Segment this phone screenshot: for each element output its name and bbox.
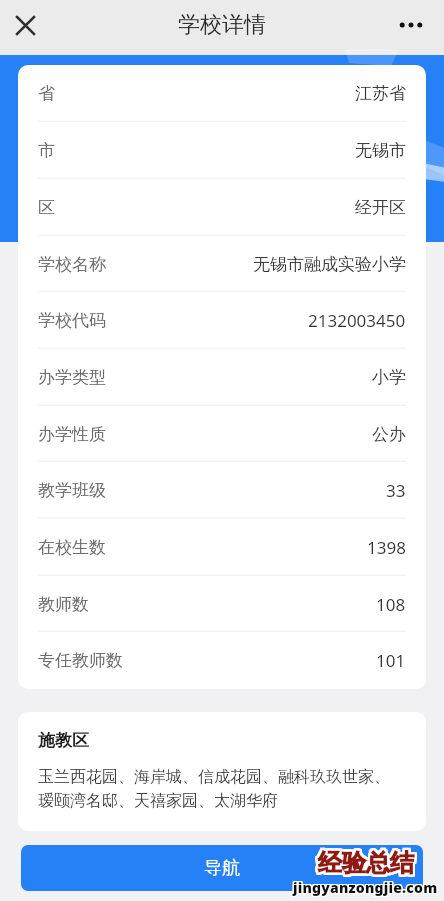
staticText: 经验总结 bbox=[319, 850, 415, 880]
staticText: 江苏省 bbox=[355, 83, 406, 104]
staticText: 学校代码 bbox=[38, 310, 106, 331]
staticText: 2132003450 bbox=[308, 309, 406, 332]
staticText: 学校名称 bbox=[38, 254, 106, 275]
staticText: 33 bbox=[386, 479, 406, 502]
staticText: 专任教师数 bbox=[38, 650, 123, 671]
staticText: 无锡市 bbox=[355, 140, 406, 161]
staticText: 经验总结 bbox=[316, 849, 412, 879]
staticText: 经验总结 bbox=[318, 847, 414, 877]
staticText: jingyanzongjie.com bbox=[294, 878, 439, 897]
staticText: 公办 bbox=[372, 424, 406, 445]
staticText: 区 bbox=[38, 197, 55, 218]
button[interactable]: 专任教师数 bbox=[38, 632, 406, 689]
staticText: 经验总结 bbox=[316, 847, 412, 877]
staticText: 经验总结 bbox=[319, 848, 415, 878]
staticText: 经验总结 bbox=[318, 850, 414, 880]
staticText: jingyanzongjie.com bbox=[292, 877, 437, 896]
staticText: 经验总结 bbox=[320, 850, 416, 880]
staticText: 经验总结 bbox=[319, 847, 415, 877]
staticText: 经验总结 bbox=[318, 849, 414, 879]
staticText: 经验总结 bbox=[318, 848, 414, 878]
button[interactable]: 教学班级 bbox=[38, 462, 406, 519]
staticText: 经验总结 bbox=[316, 846, 412, 876]
button[interactable]: 学校代码 bbox=[38, 292, 406, 349]
staticText: jingyanzongjie.com bbox=[294, 879, 439, 898]
button[interactable]: 教师数 bbox=[38, 576, 406, 632]
staticText: 经验总结 bbox=[316, 850, 412, 880]
staticText: 小学 bbox=[372, 367, 406, 388]
staticText: 经验总结 bbox=[317, 846, 413, 876]
staticText: jingyanzongjie.com bbox=[292, 879, 437, 898]
staticText: 经验总结 bbox=[319, 849, 415, 879]
staticText: 经开区 bbox=[355, 197, 406, 218]
staticText: 办学性质 bbox=[38, 424, 106, 445]
staticText: 经验总结 bbox=[320, 849, 416, 879]
staticText: 经验总结 bbox=[320, 847, 416, 877]
staticText: jingyanzongjie.com bbox=[294, 877, 439, 896]
button[interactable]: 学校名称 bbox=[38, 236, 406, 292]
staticText: 省 bbox=[38, 83, 55, 104]
staticText: 108 bbox=[376, 593, 406, 616]
staticText: 市 bbox=[38, 140, 55, 161]
staticText: 1398 bbox=[367, 536, 406, 559]
staticText: 办学类型 bbox=[38, 367, 106, 388]
staticText: 经验总结 bbox=[320, 846, 416, 876]
button[interactable]: 办学性质 bbox=[38, 406, 406, 462]
button[interactable]: More options bbox=[394, 8, 428, 42]
button[interactable]: 导航 bbox=[21, 845, 423, 891]
staticText: 学校详情 bbox=[178, 11, 266, 39]
staticText: 教师数 bbox=[38, 594, 89, 615]
staticText: 经验总结 bbox=[317, 849, 413, 879]
button[interactable]: 在校生数 bbox=[38, 519, 406, 576]
staticText: 经验总结 bbox=[317, 848, 413, 878]
staticText: 教学班级 bbox=[38, 480, 106, 501]
staticText: jingyanzongjie.com bbox=[293, 878, 438, 897]
staticText: 经验总结 bbox=[317, 850, 413, 880]
button[interactable]: 办学类型 bbox=[38, 349, 406, 406]
staticText: 在校生数 bbox=[38, 537, 106, 558]
staticText: jingyanzongjie.com bbox=[292, 878, 437, 897]
staticText: 导航 bbox=[204, 857, 240, 880]
staticText: 施教区 bbox=[38, 730, 89, 751]
staticText: 玉兰西花园、海岸城、信成花园、融科玖玖世家、瑷颐湾名邸、天禧家园、太湖华府 bbox=[38, 767, 404, 811]
button[interactable]: Close bbox=[8, 8, 42, 42]
staticText: 经验总结 bbox=[319, 846, 415, 876]
staticText: 经验总结 bbox=[317, 847, 413, 877]
button[interactable]: 区 bbox=[38, 179, 406, 236]
staticText: 经验总结 bbox=[318, 846, 414, 876]
staticText: jingyanzongjie.com bbox=[293, 879, 438, 898]
staticText: 经验总结 bbox=[320, 848, 416, 878]
button[interactable]: 省 bbox=[38, 65, 406, 122]
button[interactable]: 市 bbox=[38, 122, 406, 179]
staticText: 经验总结 bbox=[316, 848, 412, 878]
staticText: 101 bbox=[376, 649, 406, 672]
staticText: 无锡市融成实验小学 bbox=[253, 254, 406, 275]
staticText: jingyanzongjie.com bbox=[293, 877, 438, 896]
